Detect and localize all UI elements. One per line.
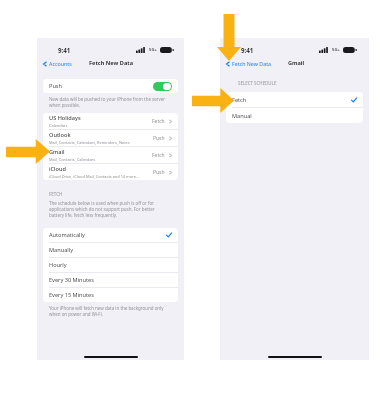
staticText: 5G+ <box>149 47 157 53</box>
staticText: Fetch <box>152 118 165 125</box>
staticText: Fetch <box>152 152 165 159</box>
staticText: 5G+ <box>332 47 340 53</box>
staticText: The schedule below is used when push is … <box>49 200 155 218</box>
staticText: US Holidays <box>49 114 81 122</box>
button[interactable]: Hourly <box>43 257 178 272</box>
button[interactable]: Manual <box>226 107 363 123</box>
staticText: 9:41 <box>241 46 254 54</box>
button[interactable]: US Holidays <box>43 113 178 129</box>
staticText: Push <box>49 82 62 90</box>
staticText: Fetch New Data <box>232 60 272 67</box>
staticText: Push <box>153 135 165 142</box>
button[interactable]: Fetch New Data <box>224 60 273 67</box>
staticText: Manually <box>49 246 74 254</box>
staticText: iCloud <box>49 165 66 173</box>
other: Pointer to Fetch row <box>192 88 234 113</box>
staticText: Hourly <box>49 261 67 269</box>
staticText: New data will be pushed to your iPhone f… <box>49 96 166 108</box>
button[interactable]: Accounts <box>41 60 73 67</box>
staticText: FETCH <box>49 191 63 197</box>
button[interactable]: Every 30 Minutes <box>43 272 178 287</box>
staticText: Accounts <box>49 60 72 67</box>
button[interactable]: Push <box>43 79 178 93</box>
staticText: SELECT SCHEDULE <box>238 80 277 86</box>
button[interactable]: Outlook <box>43 129 178 146</box>
button[interactable]: Automatically <box>43 228 178 242</box>
button[interactable]: iCloud <box>43 163 178 180</box>
other: Pointer to back button <box>217 14 241 61</box>
staticText: 9:41 <box>58 46 71 54</box>
staticText: Your iPhone will fetch new data in the b… <box>49 305 164 317</box>
staticText: Manual <box>232 112 252 120</box>
staticText: Gmail <box>288 59 305 67</box>
staticText: Fetch <box>232 96 247 104</box>
staticText: Every 15 Minutes <box>49 291 94 299</box>
button[interactable]: Every 15 Minutes <box>43 287 178 302</box>
staticText: Fetch New Data <box>89 59 134 67</box>
other: Pointer to Gmail row <box>6 139 50 164</box>
staticText: Mail, Contacts, Calendars, Reminders, No… <box>49 140 130 145</box>
staticText: Automatically <box>49 231 85 239</box>
staticText: Push <box>153 169 165 176</box>
staticText: iCloud Drive, iCloud Mail, Contacts and … <box>49 174 139 179</box>
staticText: Calendars <box>49 123 68 128</box>
staticText: Every 30 Minutes <box>49 276 94 284</box>
button[interactable]: Manually <box>43 242 178 257</box>
staticText: Gmail <box>49 148 65 156</box>
button[interactable]: Gmail <box>43 146 178 163</box>
staticText: Mail, Contacts, Calendars <box>49 157 96 162</box>
button[interactable]: Fetch <box>226 92 363 107</box>
staticText: Outlook <box>49 131 71 139</box>
